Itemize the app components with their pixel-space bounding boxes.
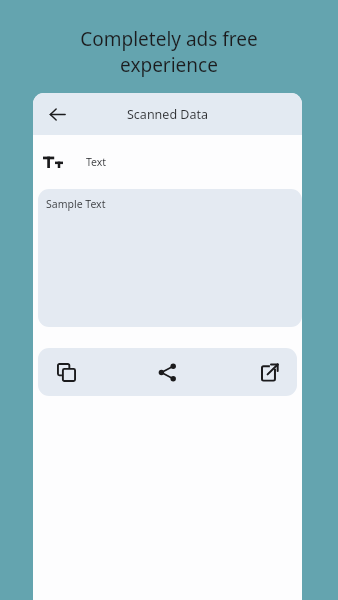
button[interactable]: Back bbox=[43, 100, 71, 128]
button[interactable]: Sample Text bbox=[38, 189, 302, 327]
staticText: Sample Text bbox=[46, 197, 106, 211]
staticText: Text bbox=[86, 155, 107, 169]
button[interactable]: Copy bbox=[48, 354, 84, 390]
button[interactable]: Open in new bbox=[251, 354, 287, 390]
staticText: Scanned Data bbox=[127, 106, 208, 123]
button[interactable]: Share bbox=[149, 354, 185, 390]
button[interactable]: Text bbox=[33, 135, 302, 189]
staticText: Completely ads free experience bbox=[80, 26, 258, 77]
